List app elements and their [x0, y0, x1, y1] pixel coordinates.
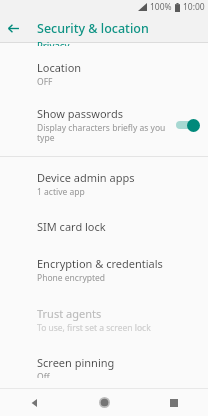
staticText: 10:00	[183, 1, 205, 13]
staticText: Location	[37, 60, 82, 75]
staticText: To use, first set a screen lock	[37, 322, 151, 334]
button[interactable]: SIM card lock	[0, 208, 208, 245]
staticText: 1 active app	[37, 186, 85, 198]
button[interactable]: Back	[0, 15, 26, 41]
staticText: Phone encrypted	[37, 272, 106, 284]
staticText: Encryption & credentials	[37, 256, 163, 271]
staticText: Privacy	[37, 39, 70, 46]
staticText: Show passwords	[37, 106, 123, 121]
staticText: Device admin apps	[37, 170, 135, 185]
button[interactable]: Trust agents	[0, 294, 208, 344]
button[interactable]: Show passwords toggle	[174, 117, 200, 133]
staticText: OFF	[37, 76, 53, 88]
button[interactable]: Device admin apps	[0, 157, 208, 208]
staticText: 100%	[150, 1, 172, 13]
staticText: Off	[37, 371, 50, 378]
staticText: Trust agents	[37, 306, 102, 321]
staticText: SIM card lock	[37, 219, 106, 234]
button[interactable]: Screen pinning	[0, 344, 208, 388]
button[interactable]: Back	[0, 389, 70, 416]
button[interactable]: Location	[0, 50, 208, 98]
button[interactable]: Home	[70, 389, 139, 416]
button[interactable]: Recent apps	[139, 389, 208, 416]
button[interactable]: Encryption & credentials	[0, 245, 208, 294]
button[interactable]: Show passwords	[0, 98, 208, 153]
staticText: Security & location	[37, 20, 149, 37]
staticText: Screen pinning	[37, 355, 115, 370]
staticText: Display characters briefly as you type	[37, 122, 170, 144]
